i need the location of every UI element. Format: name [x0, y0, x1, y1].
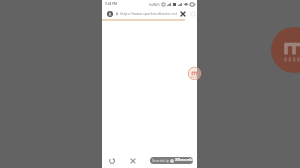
staticText: Recorded by [152, 159, 169, 163]
button[interactable]: Reload page [107, 156, 117, 166]
button[interactable]: Stop loading [178, 9, 187, 18]
staticText: XRecorder [175, 157, 193, 164]
staticText: 9:34 PM [105, 2, 118, 6]
staticText: https://www.sparkssoftware.net [120, 11, 178, 16]
button[interactable]: Recorded by XRecorder [150, 157, 193, 164]
button[interactable]: Site information [107, 11, 113, 17]
button[interactable]: Close tab [128, 156, 138, 166]
staticText: VoWiFi [149, 2, 160, 7]
button[interactable]: Tabs [189, 10, 197, 18]
